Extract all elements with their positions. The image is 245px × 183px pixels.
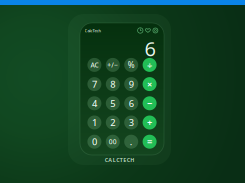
button[interactable]: 9 <box>124 77 138 91</box>
staticText: 2 <box>110 116 115 129</box>
staticText: 7 <box>92 78 97 90</box>
button[interactable]: 7 <box>87 77 101 91</box>
staticText: − <box>147 97 152 109</box>
button[interactable]: ÷ <box>143 58 157 72</box>
staticText: % <box>128 60 135 70</box>
button[interactable]: 6 <box>124 96 138 110</box>
staticText: H <box>130 156 134 164</box>
button[interactable]: % <box>124 58 138 72</box>
button[interactable]: 0 <box>87 135 101 149</box>
button[interactable]: Favourites <box>144 27 151 34</box>
staticText: = <box>147 135 152 148</box>
staticText: 1 <box>92 116 97 129</box>
staticText: +/− <box>107 60 118 69</box>
staticText: CalcTech <box>84 28 101 33</box>
staticText: + <box>147 116 152 129</box>
staticText: 8 <box>110 78 115 90</box>
button[interactable]: + <box>143 115 157 129</box>
button[interactable]: 8 <box>106 77 120 91</box>
staticText: C <box>127 156 130 164</box>
staticText: . <box>130 135 133 148</box>
button[interactable]: = <box>143 135 157 149</box>
button[interactable]: 3 <box>124 115 138 129</box>
button[interactable]: 1 <box>87 115 101 129</box>
button[interactable]: × <box>143 77 157 91</box>
staticText: 3 <box>129 116 134 129</box>
staticText: C <box>116 156 119 164</box>
staticText: L <box>113 156 116 164</box>
staticText: × <box>147 78 152 90</box>
button[interactable]: +/− <box>106 58 120 72</box>
staticText: 6 <box>129 97 134 109</box>
staticText: C <box>105 156 108 164</box>
staticText: 00 <box>109 137 117 146</box>
button[interactable]: . <box>124 135 138 149</box>
button[interactable]: AC <box>87 58 101 72</box>
staticText: 5 <box>110 97 115 109</box>
staticText: E <box>123 156 126 164</box>
button[interactable]: Settings <box>152 27 159 34</box>
staticText: 4 <box>92 97 97 109</box>
staticText: A <box>108 156 112 164</box>
button[interactable]: 2 <box>106 115 120 129</box>
button[interactable]: History <box>137 27 144 34</box>
staticText: T <box>120 156 123 164</box>
staticText: ÷ <box>147 59 152 71</box>
button[interactable]: − <box>143 96 157 110</box>
staticText: 6 <box>144 35 155 62</box>
button[interactable]: 5 <box>106 96 120 110</box>
staticText: AC <box>90 60 98 69</box>
staticText: 9 <box>129 78 134 90</box>
button[interactable]: 00 <box>106 135 120 149</box>
button[interactable]: 4 <box>87 96 101 110</box>
staticText: 0 <box>92 135 97 148</box>
